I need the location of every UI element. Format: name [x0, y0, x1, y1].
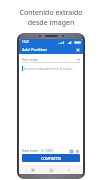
- staticText: COMPARTIR: [41, 156, 61, 161]
- button[interactable]: Settings: [74, 46, 81, 53]
- staticText: 10:41: [22, 40, 30, 44]
- button[interactable]: Back: [65, 166, 73, 174]
- button[interactable]: 0 / 1000: [41, 149, 53, 153]
- staticText: Contenido extraído desde imagen: [19, 8, 83, 28]
- staticText: Have hints:: [22, 149, 39, 153]
- button[interactable]: Pick mode: [22, 56, 80, 62]
- button[interactable]: Copy: [68, 148, 74, 154]
- button[interactable]: Home: [47, 166, 55, 174]
- staticText: Add Position: [22, 47, 48, 53]
- button[interactable]: Clear: [74, 148, 80, 154]
- staticText: Inserte manualmente el texto...: [24, 66, 74, 71]
- button[interactable]: COMPARTIR: [22, 154, 80, 162]
- staticText: Pick mode: [22, 57, 39, 61]
- button[interactable]: Recents: [29, 166, 37, 174]
- staticText: 0 / 1000: [41, 149, 53, 153]
